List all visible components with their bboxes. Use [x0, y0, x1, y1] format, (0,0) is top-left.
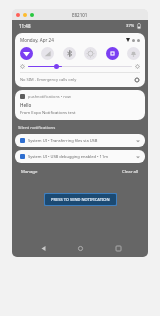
- button[interactable]: Back: [36, 241, 50, 255]
- button[interactable]: Toggle off: [127, 47, 140, 60]
- staticText: From Expo Notifications test: [20, 110, 76, 116]
- button[interactable]: System UI • USB debugging enabled • 11m: [15, 150, 145, 163]
- button[interactable]: Recents: [111, 241, 125, 255]
- button[interactable]: Clear all: [120, 167, 141, 175]
- staticText: System UI • USB debugging enabled • 11m: [28, 154, 136, 159]
- staticText: Monday, Apr 24: [20, 37, 54, 43]
- button[interactable]: Toggle on: [20, 47, 33, 60]
- button[interactable]: Toggle off: [63, 47, 76, 60]
- staticText: System UI • Transferring files via USB: [28, 138, 136, 143]
- button[interactable]: Manage: [19, 167, 40, 175]
- button[interactable]: Maximize: [30, 13, 34, 17]
- button[interactable]: System UI • Transferring files via USB: [15, 134, 145, 147]
- staticText: Clear all: [122, 168, 139, 174]
- button[interactable]: Toggle on: [106, 47, 119, 60]
- button[interactable]: PRESS TO SEND NOTIFICATION: [45, 194, 116, 205]
- button[interactable]: Toggle off: [84, 47, 97, 60]
- button[interactable]: Settings: [133, 76, 140, 83]
- staticText: pushnotifications • now: [28, 94, 71, 99]
- staticText: Manage: [21, 168, 38, 174]
- button[interactable]: Close: [16, 13, 20, 17]
- staticText: 11:48: [19, 23, 31, 29]
- button[interactable]: Minimize: [23, 13, 27, 17]
- staticText: Hello: [20, 102, 32, 108]
- button[interactable]: pushnotifications • now: [15, 90, 145, 120]
- button[interactable]: Home: [73, 241, 87, 255]
- staticText: Silent notifications: [18, 125, 56, 131]
- button[interactable]: Toggle off: [41, 47, 54, 60]
- staticText: PRESS TO SEND NOTIFICATION: [51, 197, 110, 202]
- button[interactable]: Brightness: [20, 64, 140, 69]
- staticText: No SIM - Emergency calls only: [20, 77, 77, 82]
- staticText: 37%: [126, 23, 135, 29]
- staticText: E82101: [72, 12, 88, 18]
